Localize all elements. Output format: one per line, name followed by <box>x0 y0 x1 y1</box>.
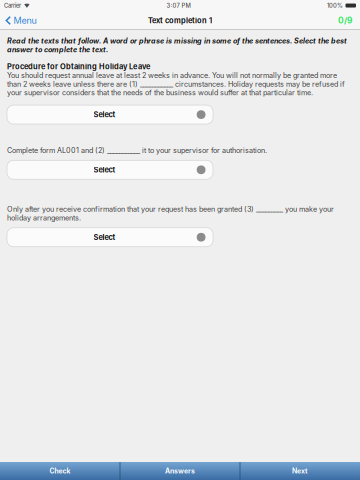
staticText: Next <box>292 467 308 475</box>
staticText: Carrier <box>4 2 21 9</box>
button[interactable]: Select <box>7 105 213 124</box>
staticText: Select <box>93 110 115 119</box>
staticText: Text completion 1 <box>148 16 212 25</box>
staticText: 3:07 PM <box>166 2 190 9</box>
staticText: Menu <box>13 15 36 26</box>
staticText: Select <box>93 165 115 174</box>
staticText: 0/9 <box>338 15 352 25</box>
button[interactable]: Next <box>240 462 360 480</box>
staticText: Check <box>49 467 70 475</box>
staticText: Read the texts that follow. A word or ph… <box>7 36 347 54</box>
staticText: 100% <box>327 2 343 9</box>
staticText: Only after you receive confirmation that… <box>7 205 334 222</box>
staticText: Select <box>93 233 115 242</box>
button[interactable]: Check <box>0 462 120 480</box>
button[interactable]: Answers <box>120 462 240 480</box>
button[interactable]: Menu <box>0 11 41 30</box>
button[interactable]: Select <box>7 228 213 247</box>
staticText: Complete form AL001 and (2) ___________ … <box>7 146 267 155</box>
button[interactable]: 0/9 <box>330 11 360 30</box>
staticText: Procedure for Obtaining Holiday Leave <box>7 62 150 71</box>
button[interactable]: Select <box>7 160 213 179</box>
staticText: Answers <box>165 467 195 475</box>
staticText: You should request annual leave at least… <box>7 71 345 97</box>
